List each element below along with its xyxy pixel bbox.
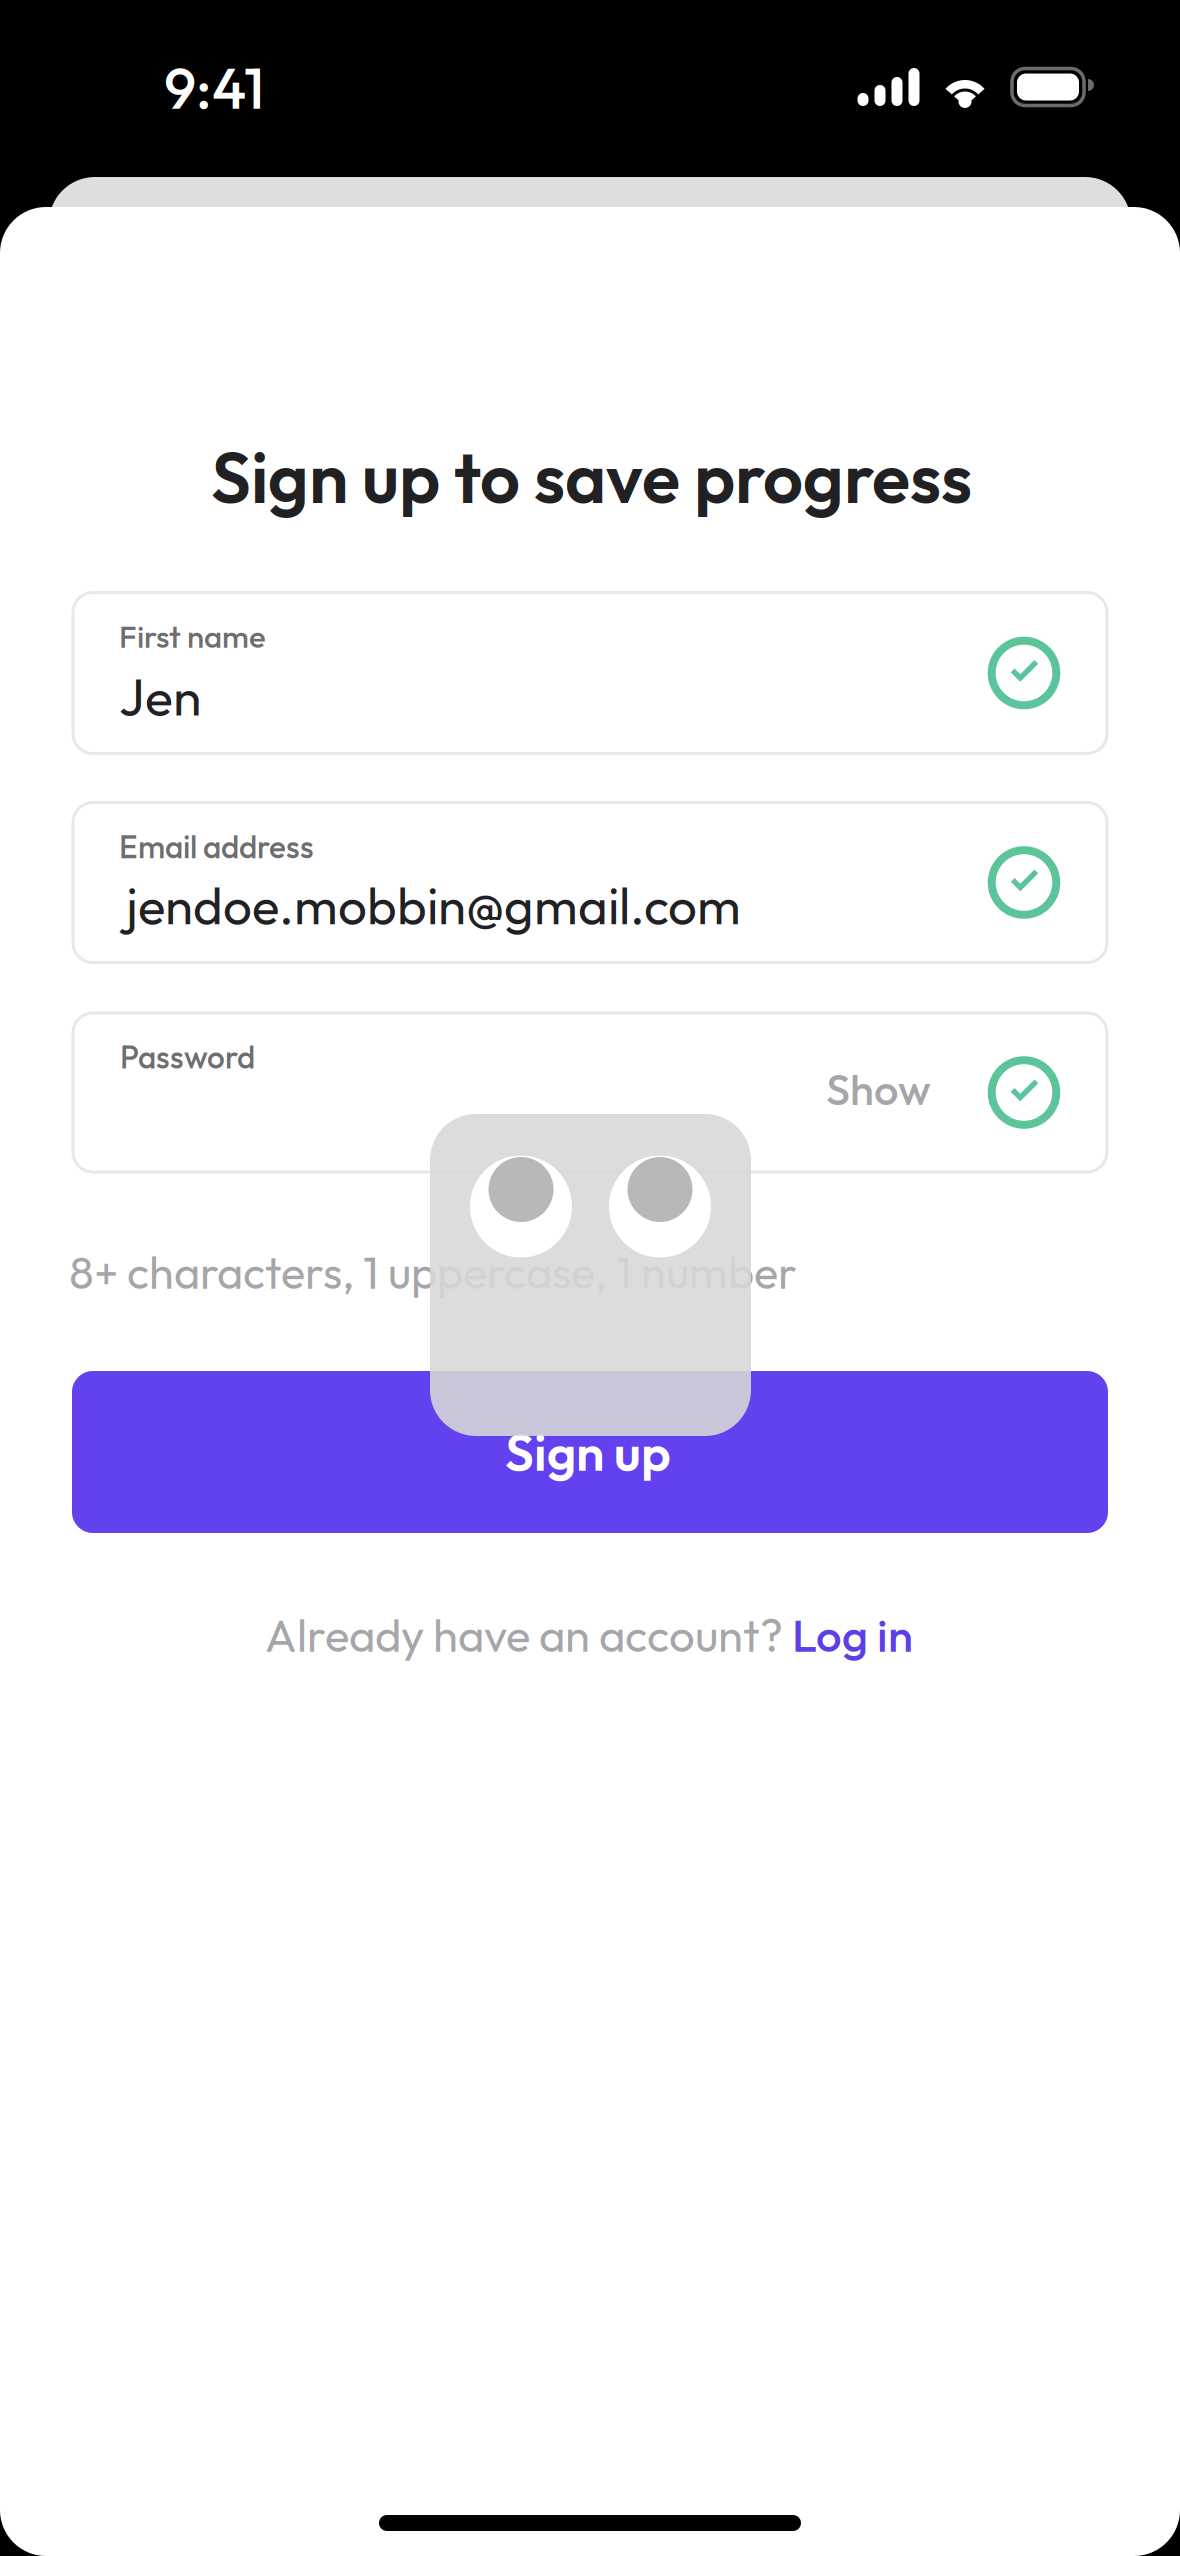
button[interactable]: Already have an account?: [241, 1586, 941, 1684]
button[interactable]: Sign up: [72, 1371, 1108, 1533]
staticText: Show: [826, 1062, 931, 1116]
staticText: Jen: [119, 663, 201, 729]
staticText: Email address: [119, 827, 314, 866]
button[interactable]: Email address: [73, 802, 1107, 962]
staticText: Log in: [792, 1606, 913, 1664]
staticText: Sign up to save progress: [211, 433, 972, 521]
staticText: 8+ characters, 1 uppercase, 1 number: [69, 1244, 797, 1300]
staticText: jendoe.mobbin@gmail.com: [126, 873, 741, 938]
button[interactable]: First name: [73, 592, 1107, 753]
staticText: Already have an account?: [265, 1606, 792, 1664]
staticText: 9:41: [164, 51, 264, 124]
staticText: Password: [120, 1037, 255, 1077]
staticText: First name: [119, 616, 266, 656]
staticText: Sign up: [505, 1420, 671, 1484]
button[interactable]: Show: [802, 1039, 958, 1139]
